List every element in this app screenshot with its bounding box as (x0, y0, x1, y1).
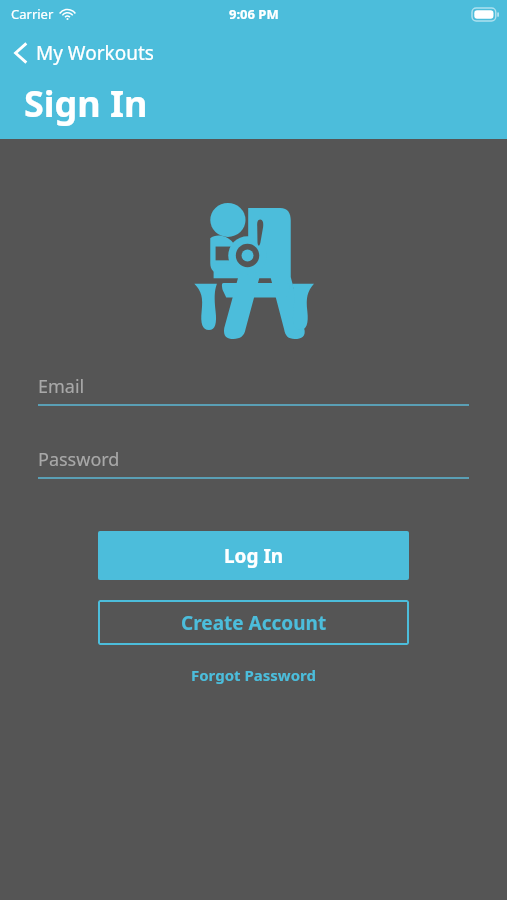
staticText: My Workouts (36, 40, 154, 66)
staticText: Create Account (181, 610, 327, 636)
button[interactable]: Email (0, 368, 507, 406)
button[interactable]: My Workouts (0, 36, 166, 70)
staticText: Email (38, 374, 85, 399)
staticText: Carrier (11, 5, 54, 23)
staticText: Password (38, 447, 120, 472)
button[interactable]: Password (0, 441, 507, 479)
staticText: 9:06 PM (229, 5, 279, 23)
staticText: Log In (224, 543, 284, 569)
button[interactable]: Forgot Password (181, 661, 326, 689)
other: Workout (187, 201, 320, 339)
staticText: Sign In (24, 79, 148, 128)
button[interactable]: Log In (98, 531, 409, 580)
button[interactable]: Create Account (98, 600, 409, 645)
staticText: Forgot Password (191, 665, 316, 685)
